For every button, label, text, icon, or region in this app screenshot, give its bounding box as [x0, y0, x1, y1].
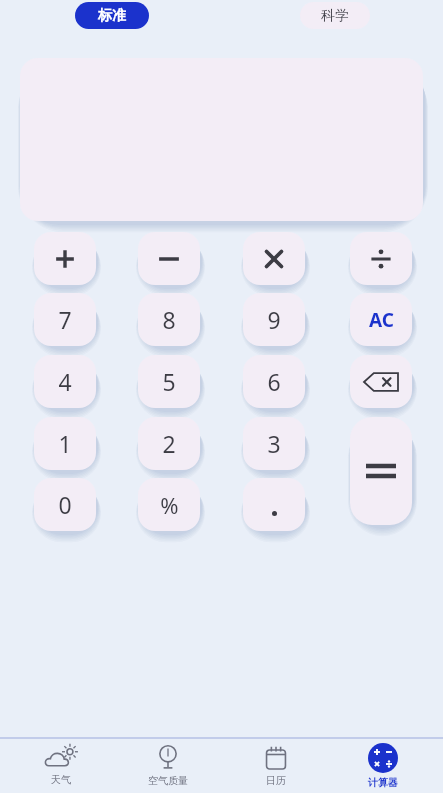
staticText: 5: [162, 366, 176, 397]
staticText: 7: [58, 304, 72, 335]
staticText: 8: [162, 304, 176, 335]
button[interactable]: 天气: [13, 739, 108, 793]
button[interactable]: 6: [243, 355, 305, 408]
staticText: 1: [58, 428, 72, 459]
button[interactable]: Minus: [138, 232, 200, 285]
staticText: 4: [58, 366, 72, 397]
staticText: 9: [267, 304, 281, 335]
button[interactable]: 8: [138, 293, 200, 346]
button[interactable]: 4: [34, 355, 96, 408]
staticText: AC: [369, 307, 394, 333]
button[interactable]: 9: [243, 293, 305, 346]
staticText: 3: [267, 428, 281, 459]
staticText: 标准: [98, 7, 126, 25]
button[interactable]: 0: [34, 478, 96, 531]
button[interactable]: Divide: [350, 232, 412, 285]
button[interactable]: Plus: [34, 232, 96, 285]
staticText: 2: [162, 428, 176, 459]
staticText: %: [160, 490, 179, 520]
button[interactable]: AC: [350, 293, 412, 346]
staticText: 日历: [266, 774, 286, 787]
button[interactable]: 科学: [300, 2, 370, 29]
staticText: 天气: [51, 773, 71, 786]
button[interactable]: 日历: [228, 739, 323, 793]
button[interactable]: %: [138, 478, 200, 531]
button[interactable]: 7: [34, 293, 96, 346]
staticText: 空气质量: [148, 774, 188, 787]
button[interactable]: 空气质量: [120, 739, 215, 793]
button[interactable]: 1: [34, 417, 96, 470]
staticText: 科学: [321, 7, 349, 25]
button[interactable]: 2: [138, 417, 200, 470]
button[interactable]: Equals: [350, 417, 412, 525]
staticText: 计算器: [368, 776, 398, 789]
button[interactable]: Multiply: [243, 232, 305, 285]
button[interactable]: Backspace: [350, 355, 412, 408]
button[interactable]: 计算器: [335, 739, 430, 793]
staticText: 0: [58, 489, 72, 520]
button[interactable]: 5: [138, 355, 200, 408]
staticText: 6: [267, 366, 281, 397]
button[interactable]: [243, 478, 305, 531]
button[interactable]: 3: [243, 417, 305, 470]
button[interactable]: 标准: [75, 2, 149, 29]
